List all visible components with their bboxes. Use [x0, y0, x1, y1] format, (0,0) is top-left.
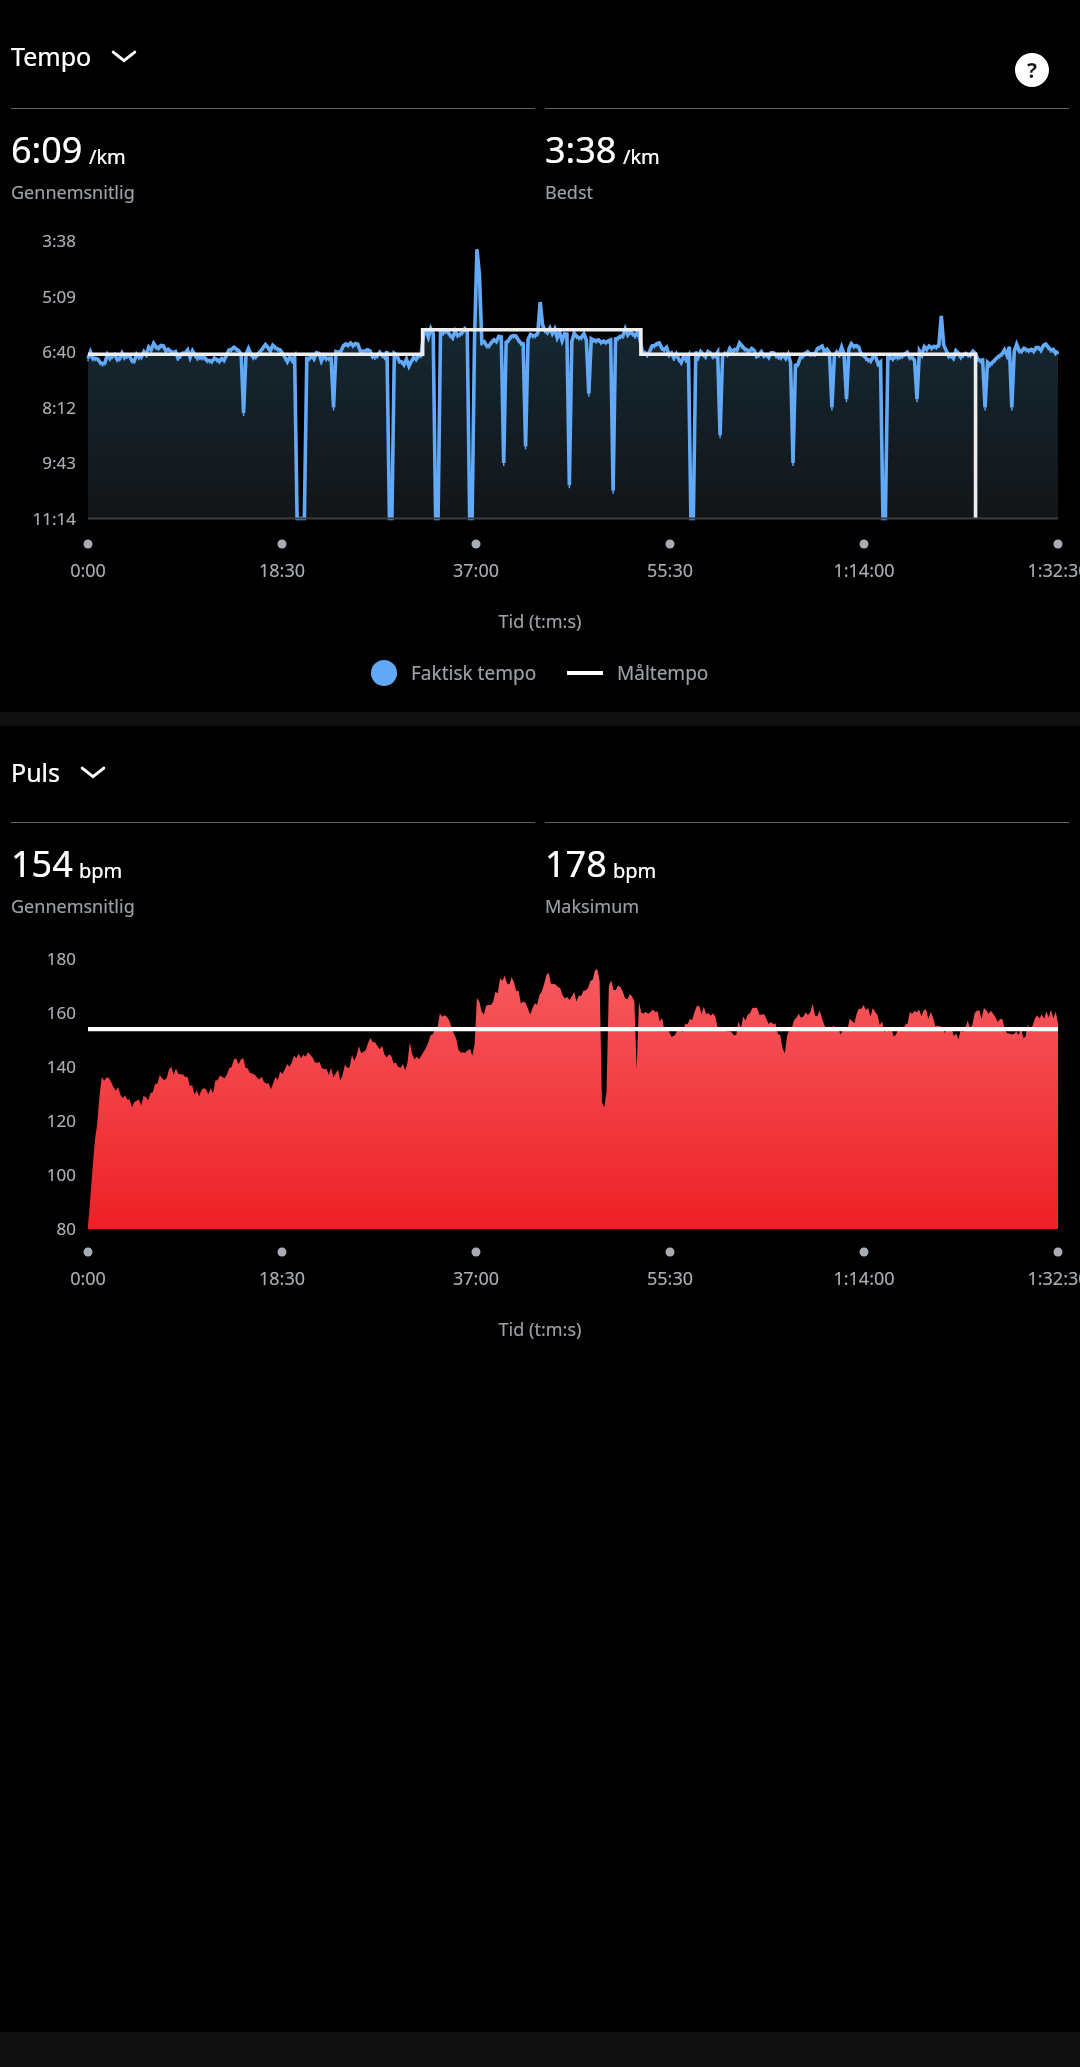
- staticText: 178: [545, 839, 607, 888]
- staticText: 1:32:30: [988, 558, 1080, 583]
- staticText: Maksimum: [545, 894, 640, 919]
- staticText: ?: [1027, 56, 1038, 85]
- staticText: Tempo: [11, 39, 92, 73]
- staticText: bpm: [613, 857, 657, 884]
- button[interactable]: 178: [545, 822, 1069, 919]
- staticText: 6:40: [0, 340, 76, 363]
- staticText: 140: [0, 1055, 76, 1078]
- staticText: 6:09: [11, 125, 83, 174]
- staticText: 37:00: [406, 1266, 546, 1291]
- staticText: Bedst: [545, 180, 594, 205]
- staticText: 18:30: [212, 558, 352, 583]
- staticText: 55:30: [600, 1266, 740, 1291]
- staticText: 100: [0, 1163, 76, 1186]
- button[interactable]: 6:09: [11, 108, 535, 205]
- staticText: 0:00: [18, 558, 158, 583]
- staticText: 9:43: [0, 451, 76, 474]
- staticText: Måltempo: [617, 660, 709, 686]
- staticText: 11:14: [0, 507, 76, 530]
- staticText: 120: [0, 1109, 76, 1132]
- staticText: 5:09: [0, 285, 76, 308]
- staticText: 154: [11, 839, 73, 888]
- staticText: 180: [0, 947, 76, 970]
- staticText: 3:38: [545, 125, 617, 174]
- staticText: Gennemsnitlig: [11, 894, 135, 919]
- staticText: 80: [0, 1217, 76, 1240]
- staticText: 1:14:00: [794, 558, 934, 583]
- staticText: Gennemsnitlig: [11, 180, 135, 205]
- staticText: /km: [89, 143, 126, 170]
- button[interactable]: Puls: [0, 748, 122, 796]
- staticText: 8:12: [0, 396, 76, 419]
- button[interactable]: Hjælp: [1012, 50, 1052, 90]
- button[interactable]: 3:38: [545, 108, 1069, 205]
- staticText: 55:30: [600, 558, 740, 583]
- staticText: Tid (t:m:s): [0, 1317, 1080, 1342]
- staticText: 1:14:00: [794, 1266, 934, 1291]
- staticText: 18:30: [212, 1266, 352, 1291]
- staticText: Puls: [11, 755, 61, 789]
- staticText: bpm: [79, 857, 123, 884]
- staticText: 0:00: [18, 1266, 158, 1291]
- staticText: Tid (t:m:s): [0, 609, 1080, 634]
- staticText: 1:32:30: [988, 1266, 1080, 1291]
- button[interactable]: Tempo: [0, 32, 153, 80]
- button[interactable]: 154: [11, 822, 535, 919]
- staticText: 160: [0, 1001, 76, 1024]
- staticText: /km: [623, 143, 660, 170]
- staticText: 37:00: [406, 558, 546, 583]
- staticText: Faktisk tempo: [411, 660, 537, 686]
- staticText: 3:38: [0, 229, 76, 252]
